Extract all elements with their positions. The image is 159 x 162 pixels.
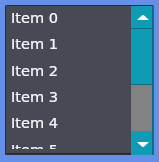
button[interactable]: Item 5 xyxy=(6,136,153,149)
staticText: Item 0 xyxy=(11,9,59,26)
staticText: Item 1 xyxy=(11,35,59,52)
button[interactable]: Item 1 xyxy=(6,30,153,56)
button[interactable]: Scroll down xyxy=(131,131,154,155)
staticText: Item 3 xyxy=(11,88,59,105)
button[interactable]: Item 0 xyxy=(6,6,153,30)
button[interactable]: Item 3 xyxy=(6,83,153,109)
staticText: Item 4 xyxy=(11,114,59,131)
button[interactable]: Scroll up xyxy=(131,6,154,28)
button[interactable]: Item 4 xyxy=(6,109,153,135)
staticText: Item 5 xyxy=(11,141,59,149)
staticText: Item 2 xyxy=(11,62,59,79)
button[interactable]: Item 2 xyxy=(6,57,153,83)
